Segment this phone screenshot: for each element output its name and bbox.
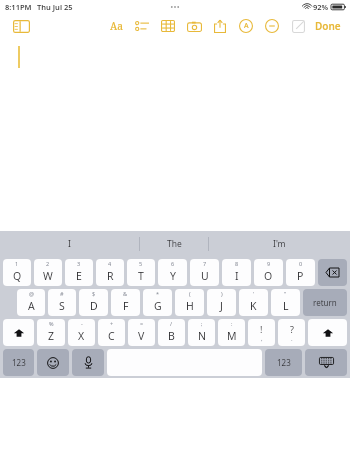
staticText: / [170, 320, 173, 327]
staticText: 123 [277, 357, 291, 368]
button[interactable]: Share [211, 17, 229, 35]
staticText: ; [201, 320, 203, 327]
staticText: J [220, 299, 223, 313]
staticText: return [313, 297, 337, 308]
button[interactable]: 8 [222, 259, 251, 286]
button[interactable]: ( [175, 289, 204, 316]
staticText: 6 [171, 260, 175, 267]
button[interactable]: Checklist [133, 17, 151, 35]
button[interactable]: I [0, 231, 139, 257]
staticText: , [261, 335, 263, 343]
staticText: S [59, 299, 65, 313]
staticText: $ [92, 290, 96, 297]
button[interactable]: " [271, 289, 300, 316]
staticText: Z [48, 329, 55, 343]
button[interactable]: @ [17, 289, 45, 316]
staticText: ( [189, 290, 191, 297]
staticText: % [49, 320, 54, 327]
button[interactable]: Insert table [159, 17, 177, 35]
staticText: 0 [299, 260, 303, 267]
staticText: X [78, 329, 85, 343]
staticText: 9 [267, 260, 271, 267]
button[interactable]: 3 [65, 259, 93, 286]
button[interactable]: 0 [286, 259, 315, 286]
button[interactable]: Backspace [318, 259, 347, 286]
button[interactable]: Show sidebar [10, 15, 32, 37]
button[interactable]: ; [188, 319, 215, 346]
button[interactable]: ? [278, 319, 305, 346]
button[interactable]: I'm [209, 231, 350, 257]
staticText: L [283, 299, 289, 313]
staticText: ? [290, 323, 294, 335]
staticText: 5 [139, 260, 143, 267]
button[interactable]: Markup [237, 17, 255, 35]
button[interactable]: 9 [254, 259, 283, 286]
button[interactable]: 1 [3, 259, 31, 286]
button[interactable]: Numbers [265, 349, 302, 376]
button[interactable]: Format text [107, 17, 125, 35]
staticText: 92% [313, 2, 329, 12]
staticText: = [140, 320, 144, 327]
button[interactable]: * [143, 289, 172, 316]
staticText: I'm [273, 238, 286, 250]
staticText: Q [13, 269, 22, 283]
staticText: W [43, 269, 53, 283]
staticText: D [90, 299, 98, 313]
button[interactable]: ' [239, 289, 268, 316]
staticText: . [291, 335, 293, 343]
button[interactable]: + [98, 319, 125, 346]
staticText: Y [170, 269, 176, 283]
staticText: 4 [108, 260, 112, 267]
staticText: 7 [203, 260, 207, 267]
button[interactable]: ) [207, 289, 236, 316]
button[interactable]: 4 [96, 259, 124, 286]
button[interactable]: & [111, 289, 140, 316]
button[interactable]: Done [312, 17, 344, 35]
staticText: 2 [46, 260, 50, 267]
staticText: ) [221, 290, 223, 297]
staticText: 123 [12, 357, 26, 368]
button[interactable]: : [218, 319, 245, 346]
staticText: The [167, 238, 182, 250]
button[interactable]: Camera [185, 17, 203, 35]
button[interactable]: 5 [127, 259, 155, 286]
staticText: I [68, 238, 71, 250]
button[interactable]: The [140, 231, 208, 257]
staticText: # [60, 290, 64, 297]
button[interactable]: Emoji [37, 349, 69, 376]
staticText: N [198, 329, 206, 343]
button[interactable]: Dictate [72, 349, 104, 376]
staticText: " [284, 290, 287, 297]
staticText: A [28, 299, 35, 313]
staticText: + [110, 320, 114, 327]
button[interactable]: Hide keyboard [305, 349, 347, 376]
button[interactable]: $ [79, 289, 108, 316]
button[interactable]: % [37, 319, 65, 346]
button[interactable]: 7 [190, 259, 219, 286]
button[interactable]: - [68, 319, 95, 346]
staticText: A [244, 21, 249, 31]
staticText: 3 [77, 260, 81, 267]
button[interactable]: 2 [34, 259, 62, 286]
staticText: Aa [110, 19, 123, 33]
staticText: B [168, 329, 175, 343]
staticText: - [81, 320, 83, 327]
button[interactable]: New note [289, 17, 307, 35]
button[interactable]: / [158, 319, 185, 346]
staticText: Thu Jul 25 [37, 2, 73, 12]
button[interactable]: Return [303, 289, 347, 316]
button[interactable]: # [48, 289, 76, 316]
staticText: T [138, 269, 144, 283]
staticText: O [264, 269, 273, 283]
staticText: * [156, 290, 160, 297]
button[interactable]: Shift [308, 319, 347, 346]
staticText: R [107, 269, 114, 283]
button[interactable]: ! [248, 319, 275, 346]
staticText: E [76, 269, 82, 283]
button[interactable]: More [263, 17, 281, 35]
button[interactable]: 6 [158, 259, 187, 286]
button[interactable]: Numbers [3, 349, 34, 376]
button[interactable]: Shift [3, 319, 34, 346]
button[interactable]: = [128, 319, 155, 346]
